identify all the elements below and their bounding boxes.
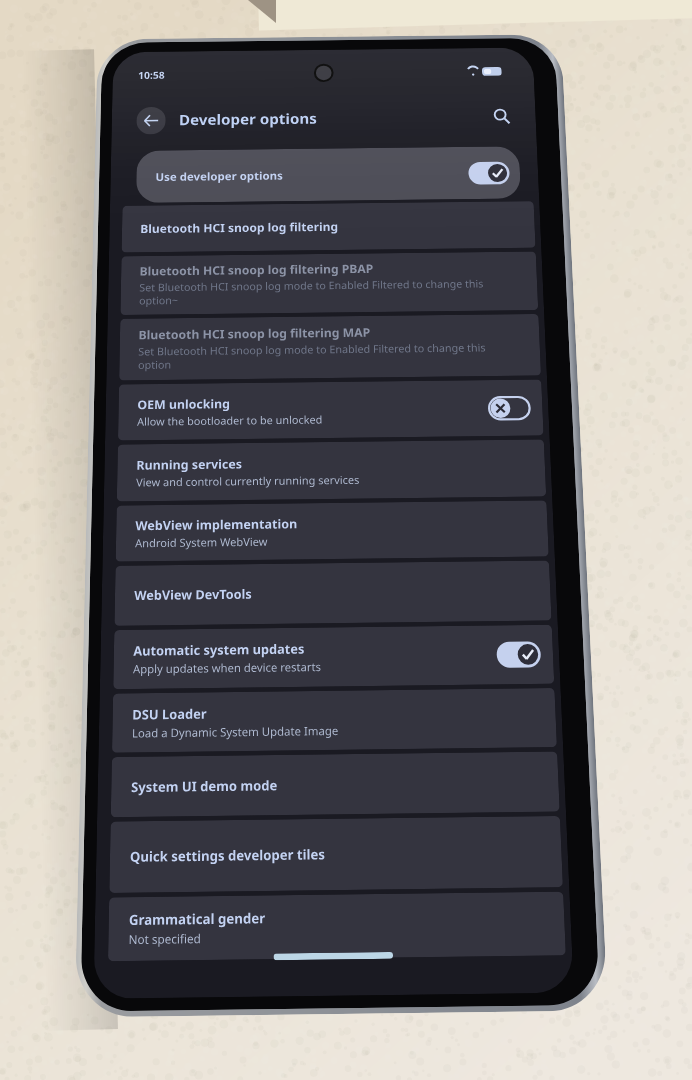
- button[interactable]: Back: [136, 107, 166, 135]
- staticText: Not specified: [128, 926, 512, 947]
- staticText: Allow the bootloader to be unlocked: [137, 410, 494, 429]
- button[interactable]: Use developer options: [136, 146, 521, 203]
- button[interactable]: Automatic system updates: [113, 625, 554, 689]
- button[interactable]: Bluetooth HCI snoop log filtering: [122, 201, 536, 253]
- staticText: Apply updates when device restarts: [133, 656, 502, 676]
- button[interactable]: DSU Loader: [112, 688, 557, 753]
- button[interactable]: Switch on: [468, 162, 510, 185]
- button[interactable]: Quick settings developer tiles: [109, 816, 563, 893]
- staticText: Set Bluetooth HCI snoop log mode to Enab…: [138, 340, 492, 372]
- staticText: Android System WebView: [135, 531, 498, 550]
- staticText: Set Bluetooth HCI snoop log mode to Enab…: [139, 276, 489, 307]
- staticText: Running services: [136, 456, 242, 474]
- staticText: System UI demo mode: [131, 776, 278, 796]
- staticText: View and control currently running servi…: [136, 470, 496, 489]
- staticText: Developer options: [179, 109, 317, 130]
- button[interactable]: Search: [488, 104, 515, 129]
- staticText: Load a Dynamic System Update Image: [132, 720, 505, 741]
- button[interactable]: Bluetooth HCI snoop log filtering PBAP: [120, 251, 538, 315]
- staticText: Bluetooth HCI snoop log filtering MAP: [138, 324, 371, 343]
- button[interactable]: System UI demo mode: [111, 751, 560, 817]
- staticText: Automatic system updates: [133, 640, 305, 660]
- staticText: WebView implementation: [135, 515, 298, 534]
- button[interactable]: OEM unlocking: [118, 379, 544, 441]
- staticText: Use developer options: [155, 168, 283, 184]
- staticText: 10:58: [138, 68, 165, 81]
- staticText: Bluetooth HCI snoop log filtering: [140, 219, 339, 237]
- button[interactable]: Switch on: [496, 641, 541, 668]
- button[interactable]: WebView implementation: [116, 500, 549, 562]
- staticText: Bluetooth HCI snoop log filtering PBAP: [139, 261, 374, 279]
- staticText: Quick settings developer tiles: [130, 845, 326, 866]
- button[interactable]: Bluetooth HCI snoop log filtering MAP: [119, 314, 541, 381]
- button[interactable]: Running services: [117, 439, 546, 501]
- staticText: DSU Loader: [132, 705, 207, 724]
- staticText: OEM unlocking: [137, 396, 230, 413]
- button[interactable]: WebView DevTools: [114, 560, 552, 626]
- staticText: Grammatical gender: [129, 909, 266, 929]
- button[interactable]: Grammatical gender: [108, 892, 566, 961]
- button[interactable]: Switch off: [488, 396, 531, 421]
- staticText: WebView DevTools: [134, 585, 252, 604]
